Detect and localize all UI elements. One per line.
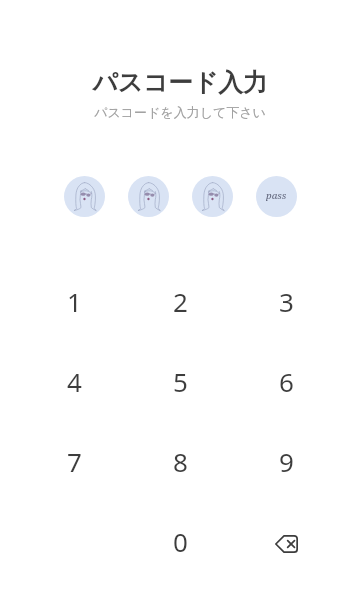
button[interactable]: 3 — [233, 261, 339, 341]
staticText: 9 — [279, 444, 294, 479]
button[interactable]: 8 — [127, 421, 233, 501]
button[interactable]: 6 — [233, 341, 339, 421]
staticText: 2 — [173, 284, 188, 319]
button[interactable]: pass — [256, 176, 297, 217]
staticText: 4 — [67, 364, 82, 399]
staticText: 5 — [173, 364, 188, 399]
staticText: pass — [266, 189, 287, 202]
button[interactable] — [192, 176, 233, 217]
button[interactable]: 0 — [127, 501, 233, 581]
staticText: 7 — [67, 444, 82, 479]
staticText: 6 — [279, 364, 294, 399]
staticText: 8 — [173, 444, 188, 479]
staticText: パスコードを入力して下さい — [94, 104, 266, 120]
button[interactable] — [64, 176, 105, 217]
button[interactable] — [128, 176, 169, 217]
staticText: パスコード入力 — [92, 67, 268, 98]
button[interactable]: 7 — [21, 421, 127, 501]
staticText: 3 — [279, 284, 294, 319]
other: Delete — [264, 519, 308, 563]
staticText: 0 — [173, 524, 188, 559]
button[interactable]: 2 — [127, 261, 233, 341]
button[interactable]: Delete — [233, 501, 339, 581]
button[interactable]: 1 — [21, 261, 127, 341]
button[interactable]: 4 — [21, 341, 127, 421]
staticText: 1 — [67, 284, 82, 319]
button[interactable]: 5 — [127, 341, 233, 421]
button[interactable]: 9 — [233, 421, 339, 501]
